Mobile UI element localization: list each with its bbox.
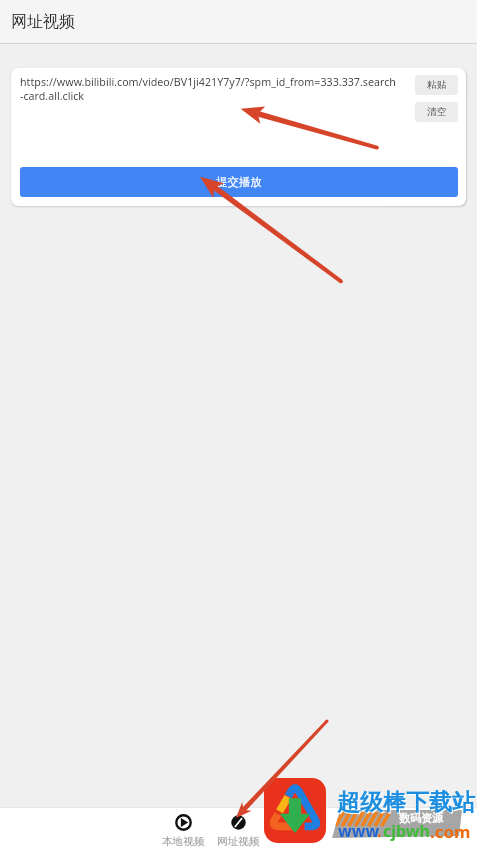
staticText: 本地视频 [162,835,205,848]
staticText: 超级棒下载站 [337,788,475,817]
staticText: cjbwh [383,820,430,842]
staticText: 网址视频 [217,835,260,848]
staticText: 超级棒下载站 [338,789,476,818]
staticText: .com [430,820,471,843]
staticText: 数码资源 [399,811,443,825]
staticText: 提交播放 [216,175,262,189]
staticText: www [338,820,380,842]
button[interactable]: 粘贴 [415,75,458,95]
staticText: 清空 [427,106,447,118]
staticText: . [377,820,382,842]
button[interactable]: 清空 [415,102,458,122]
staticText: 网址视频 [11,12,75,32]
button[interactable]: 本地视频 [156,808,211,848]
staticText: https://www.bilibili.com/video/BV1ji421Y… [20,75,396,103]
button[interactable]: 提交播放 [20,167,458,197]
staticText: 粘贴 [427,79,447,91]
button[interactable]: 网址视频 [211,808,266,848]
